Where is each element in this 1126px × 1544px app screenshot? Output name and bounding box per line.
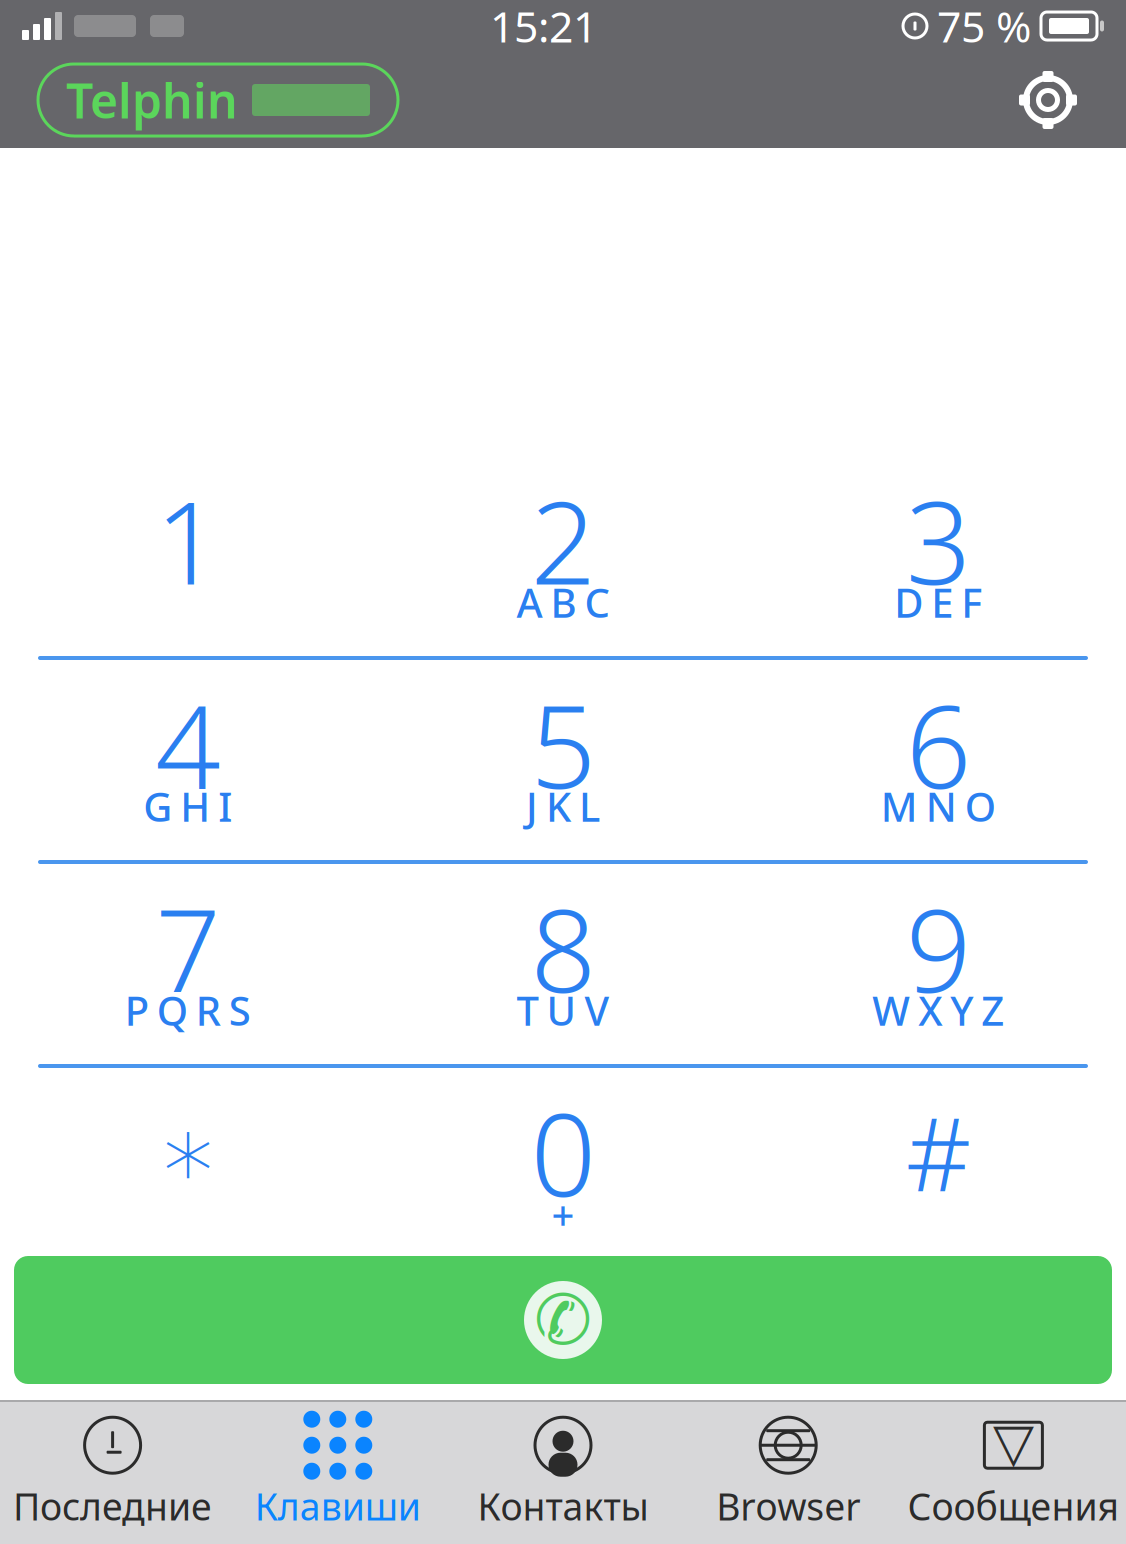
button[interactable]: 0 <box>375 1090 751 1248</box>
staticText: E <box>931 576 953 629</box>
button[interactable]: Call <box>14 1256 1112 1384</box>
button[interactable]: Browser <box>676 1402 901 1544</box>
staticText: 2 <box>530 464 595 616</box>
staticText: 4 <box>155 668 220 820</box>
button[interactable]: Telphin <box>38 64 398 136</box>
staticText: 15:21 <box>490 0 597 54</box>
button[interactable]: 8 <box>375 886 751 1044</box>
button[interactable]: ∗ <box>0 1090 375 1248</box>
staticText: Y <box>950 984 973 1037</box>
staticText: M <box>881 780 918 833</box>
staticText: T <box>516 984 538 1037</box>
staticText: G <box>143 780 172 833</box>
staticText: C <box>584 576 609 629</box>
staticText: N <box>926 780 957 833</box>
button[interactable]: 2 <box>375 478 751 636</box>
staticText: D <box>894 576 923 629</box>
button[interactable]: Клавиши <box>225 1402 450 1544</box>
staticText: 5 <box>530 668 595 820</box>
button[interactable]: 9 <box>751 886 1126 1044</box>
staticText: 3 <box>906 464 971 616</box>
staticText: B <box>550 576 576 629</box>
staticText: L <box>579 780 600 833</box>
button[interactable]: 7 <box>0 886 375 1044</box>
staticText: X <box>918 984 942 1037</box>
button[interactable]: 3 <box>751 478 1126 636</box>
staticText: F <box>961 576 982 629</box>
staticText: ▽ <box>993 1412 1034 1472</box>
staticText: K <box>546 780 571 833</box>
staticText: 1 <box>155 464 220 616</box>
staticText: 9 <box>906 872 971 1024</box>
staticText: R <box>196 984 221 1037</box>
button[interactable]: 1 <box>0 478 375 636</box>
button[interactable]: Последние <box>0 1402 225 1544</box>
staticText: I <box>218 780 232 833</box>
staticText: J <box>526 780 538 833</box>
staticText: Browser <box>716 1481 860 1531</box>
staticText: ✆ <box>534 1281 592 1359</box>
staticText: A <box>516 576 542 629</box>
staticText: O <box>965 780 996 833</box>
staticText: 7 <box>155 872 220 1024</box>
button[interactable]: 6 <box>751 682 1126 840</box>
staticText: Q <box>157 984 188 1037</box>
staticText: S <box>229 984 251 1037</box>
button[interactable]: ▽ <box>901 1402 1126 1544</box>
staticText: H <box>180 780 210 833</box>
staticText: V <box>584 984 609 1037</box>
staticText: Сообщения <box>907 1481 1119 1531</box>
staticText: ∗ <box>156 1094 219 1209</box>
staticText: Последние <box>13 1481 212 1531</box>
button[interactable]: # <box>751 1090 1126 1248</box>
button[interactable]: Контакты <box>450 1402 676 1544</box>
staticText: 8 <box>530 872 595 1024</box>
staticText: P <box>125 984 149 1037</box>
staticText: Telphin <box>66 68 238 132</box>
button[interactable]: 4 <box>0 682 375 840</box>
staticText: 0 <box>530 1076 595 1228</box>
staticText: Z <box>981 984 1004 1037</box>
staticText: U <box>546 984 576 1037</box>
staticText: + <box>551 1188 574 1241</box>
staticText: # <box>906 1085 971 1219</box>
button[interactable]: Settings <box>1010 62 1086 138</box>
staticText: 6 <box>906 668 971 820</box>
staticText: 75 % <box>937 0 1031 54</box>
button[interactable]: 5 <box>375 682 751 840</box>
staticText: W <box>872 984 910 1037</box>
staticText: Клавиши <box>255 1481 421 1531</box>
staticText: Контакты <box>477 1481 648 1531</box>
